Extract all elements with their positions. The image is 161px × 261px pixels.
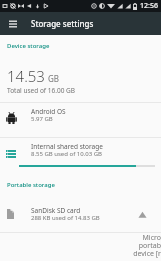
staticText: Total used of 16.00 GB xyxy=(7,86,76,95)
staticText: Micro portab device [r xyxy=(0,233,161,258)
staticText: Internal shared storage xyxy=(31,142,103,151)
staticText: 14.53 xyxy=(7,66,45,86)
button[interactable]: Internal shared storage xyxy=(0,138,161,174)
staticText: SanDisk SD card xyxy=(31,206,81,215)
button[interactable]: Open navigation drawer xyxy=(0,12,25,35)
button[interactable]: Android OS xyxy=(0,103,161,137)
staticText: Portable storage xyxy=(7,181,55,189)
staticText: 288 KB used of 14.83 GB xyxy=(31,214,100,222)
button[interactable]: Eject SD card xyxy=(134,206,150,222)
staticText: Storage settings xyxy=(31,18,94,29)
staticText: Device storage xyxy=(7,42,50,50)
staticText: 12:56 xyxy=(140,1,158,11)
staticText: GB xyxy=(48,73,60,84)
button[interactable]: SanDisk SD card xyxy=(0,199,161,232)
staticText: 5.97 GB xyxy=(31,115,53,123)
staticText: 8.55 GB used of 10.03 GB xyxy=(31,150,102,158)
staticText: Android OS xyxy=(31,107,66,116)
